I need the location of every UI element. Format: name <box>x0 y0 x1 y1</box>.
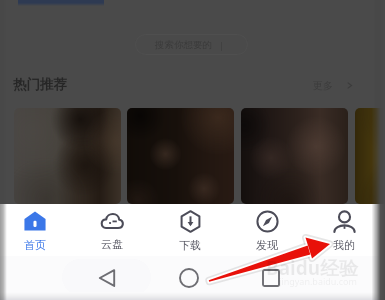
button[interactable]: Home <box>169 256 209 300</box>
button[interactable] <box>241 108 348 204</box>
staticText: jingyan.baidu.com <box>279 275 357 287</box>
button[interactable] <box>14 108 121 204</box>
staticText: 我的 <box>333 238 355 252</box>
staticText: 搜索你想要的 <box>155 39 212 51</box>
button[interactable]: 我的 <box>306 204 382 256</box>
button[interactable] <box>127 108 234 204</box>
staticText: 热门推荐 <box>13 76 67 93</box>
button[interactable]: Back <box>87 256 127 300</box>
button[interactable]: 搜索你想要的 <box>135 34 248 55</box>
button[interactable]: 下载 <box>152 204 228 256</box>
button[interactable]: 首页 <box>0 204 73 256</box>
button[interactable]: 云盘 <box>74 204 150 256</box>
button[interactable]: 发现 <box>229 204 305 256</box>
staticText: 更多 <box>313 79 333 92</box>
staticText: 发现 <box>256 238 278 252</box>
staticText: 下载 <box>179 238 201 252</box>
staticText: 云盘 <box>101 237 123 251</box>
staticText: 首页 <box>24 238 46 252</box>
button[interactable]: Recent apps <box>251 256 291 300</box>
button[interactable] <box>355 108 385 204</box>
staticText: Baidu经验 <box>266 255 359 281</box>
